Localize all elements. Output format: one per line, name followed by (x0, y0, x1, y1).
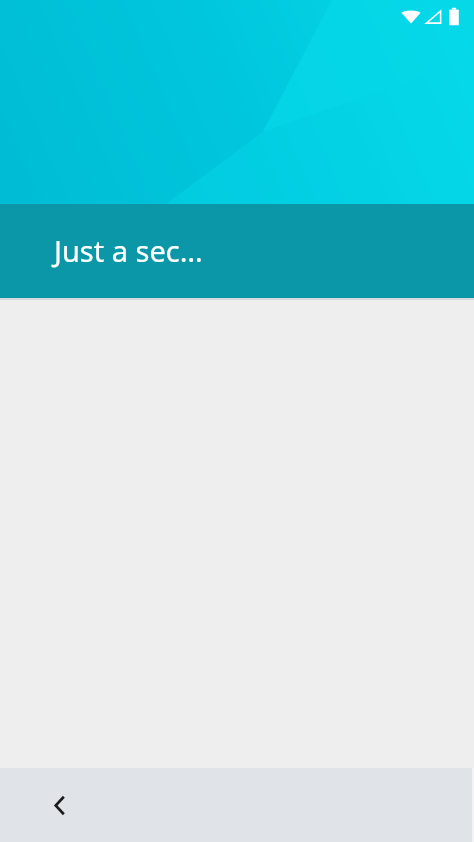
button[interactable]: Back (38, 783, 82, 827)
staticText: Just a sec… (54, 231, 203, 270)
